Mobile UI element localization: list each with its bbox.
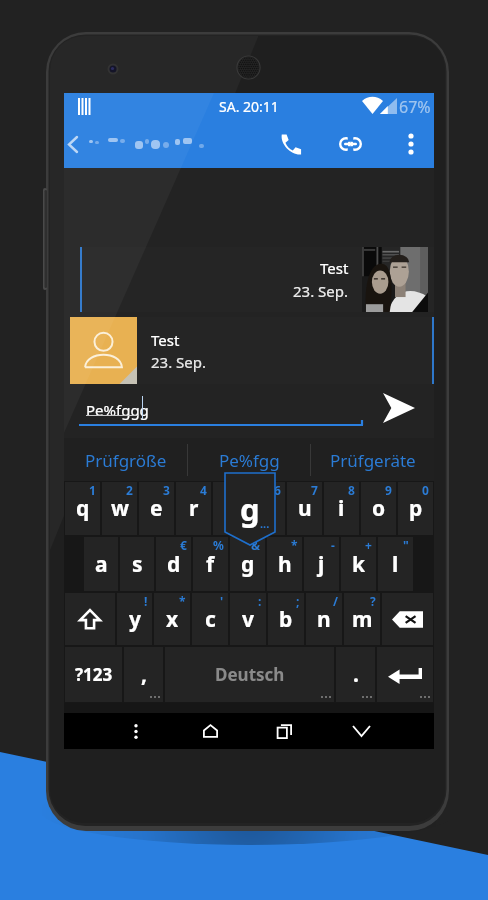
staticText: 8 xyxy=(348,482,355,498)
staticText: c xyxy=(205,605,216,634)
staticText: 67% xyxy=(399,96,431,118)
staticText: ... xyxy=(260,516,270,531)
staticText: g xyxy=(240,488,260,530)
staticText: 0 xyxy=(422,482,429,498)
button[interactable]: s xyxy=(120,537,154,591)
staticText: b xyxy=(279,605,293,634)
button[interactable]: u xyxy=(287,482,322,535)
button[interactable]: w xyxy=(102,482,137,535)
staticText: * xyxy=(291,537,298,553)
button[interactable]: Prüfgröße xyxy=(64,438,188,481)
staticText: ! xyxy=(144,593,148,609)
staticText: o xyxy=(372,494,386,523)
staticText: Pe%fgg xyxy=(219,449,280,472)
button[interactable]: Photo attachment xyxy=(362,247,428,312)
staticText: * xyxy=(179,593,186,609)
button[interactable]: a xyxy=(84,537,118,591)
staticText: Pe%fggg xyxy=(86,400,149,420)
staticText: 23. Sep. xyxy=(293,281,349,301)
staticText: d xyxy=(167,550,181,579)
staticText: : xyxy=(258,593,262,609)
staticText: w xyxy=(111,494,129,523)
staticText: a xyxy=(95,550,108,579)
button[interactable]: Pe%fgg xyxy=(188,438,311,481)
button[interactable]: Deutsch xyxy=(165,647,334,702)
button[interactable]: Send xyxy=(374,385,424,431)
button[interactable]: q xyxy=(65,482,100,535)
staticText: Deutsch xyxy=(215,663,285,686)
button[interactable]: y xyxy=(117,593,152,645)
button[interactable]: , xyxy=(124,647,163,702)
staticText: r xyxy=(189,494,199,523)
staticText: q xyxy=(76,494,90,523)
staticText: 9 xyxy=(385,482,392,498)
button[interactable]: i xyxy=(324,482,359,535)
button[interactable]: m xyxy=(344,593,380,645)
button[interactable]: Call xyxy=(267,120,314,168)
button[interactable]: x xyxy=(154,593,190,645)
button[interactable]: Enter xyxy=(377,647,433,702)
button[interactable]: p xyxy=(398,482,433,535)
staticText: j xyxy=(318,550,325,579)
staticText: v xyxy=(242,605,254,634)
button[interactable]: b xyxy=(268,593,304,645)
staticText: ?123 xyxy=(75,663,113,686)
button[interactable]: c xyxy=(192,593,228,645)
button[interactable]: Link xyxy=(325,120,375,168)
staticText: 6 xyxy=(274,482,281,498)
button[interactable]: t xyxy=(213,482,248,535)
staticText: f xyxy=(206,550,215,579)
staticText: ? xyxy=(370,593,376,609)
staticText: . xyxy=(353,660,359,689)
button[interactable]: e xyxy=(139,482,174,535)
staticText: i xyxy=(338,494,345,523)
button[interactable]: k xyxy=(341,537,376,591)
staticText: l xyxy=(392,550,399,579)
staticText: + xyxy=(365,537,372,553)
button[interactable]: Prüfgeräte xyxy=(311,438,434,481)
staticText: u xyxy=(298,494,312,523)
button[interactable]: v xyxy=(230,593,266,645)
button[interactable]: l xyxy=(378,537,413,591)
button[interactable]: r xyxy=(176,482,211,535)
staticText: 4 xyxy=(200,482,207,498)
button[interactable]: n xyxy=(306,593,342,645)
button[interactable]: Home xyxy=(190,713,230,749)
staticText: ; xyxy=(296,593,300,609)
staticText: h xyxy=(278,550,292,579)
staticText: y xyxy=(129,605,141,634)
staticText: % xyxy=(213,537,224,553)
button[interactable]: Hide keyboard xyxy=(341,713,381,749)
button[interactable]: Contact avatar xyxy=(70,317,137,384)
button[interactable]: Back xyxy=(64,120,88,168)
staticText: " xyxy=(403,537,409,553)
staticText: g xyxy=(241,550,255,579)
staticText: - xyxy=(331,537,335,553)
staticText: Prüfgröße xyxy=(85,449,167,472)
button[interactable]: . xyxy=(336,647,375,702)
staticText: , xyxy=(141,660,147,689)
button[interactable]: g xyxy=(230,537,265,591)
staticText: 7 xyxy=(311,482,318,498)
staticText: & xyxy=(251,537,261,553)
button[interactable]: d xyxy=(156,537,191,591)
button[interactable]: Backspace xyxy=(382,593,433,645)
button[interactable]: Recent apps xyxy=(264,713,304,749)
button[interactable]: h xyxy=(267,537,302,591)
button[interactable]: Shift xyxy=(65,593,115,645)
button[interactable]: More options xyxy=(389,120,433,168)
staticText: 3 xyxy=(163,482,170,498)
button[interactable]: f xyxy=(193,537,228,591)
button[interactable]: z xyxy=(250,482,285,535)
staticText: n xyxy=(317,605,331,634)
button[interactable]: o xyxy=(361,482,396,535)
staticText: m xyxy=(352,605,373,634)
button[interactable]: j xyxy=(304,537,339,591)
button[interactable]: Menu xyxy=(116,713,156,749)
button[interactable]: ?123 xyxy=(65,647,122,702)
staticText: 1 xyxy=(89,482,96,498)
staticText: x xyxy=(166,605,179,634)
staticText: s xyxy=(132,550,143,579)
